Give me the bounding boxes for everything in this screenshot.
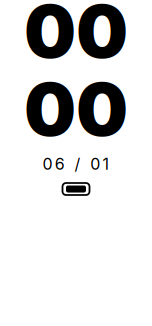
staticText: 00 <box>24 65 128 153</box>
staticText: 00 <box>24 0 128 75</box>
staticText: 06 / 01 <box>42 154 110 174</box>
